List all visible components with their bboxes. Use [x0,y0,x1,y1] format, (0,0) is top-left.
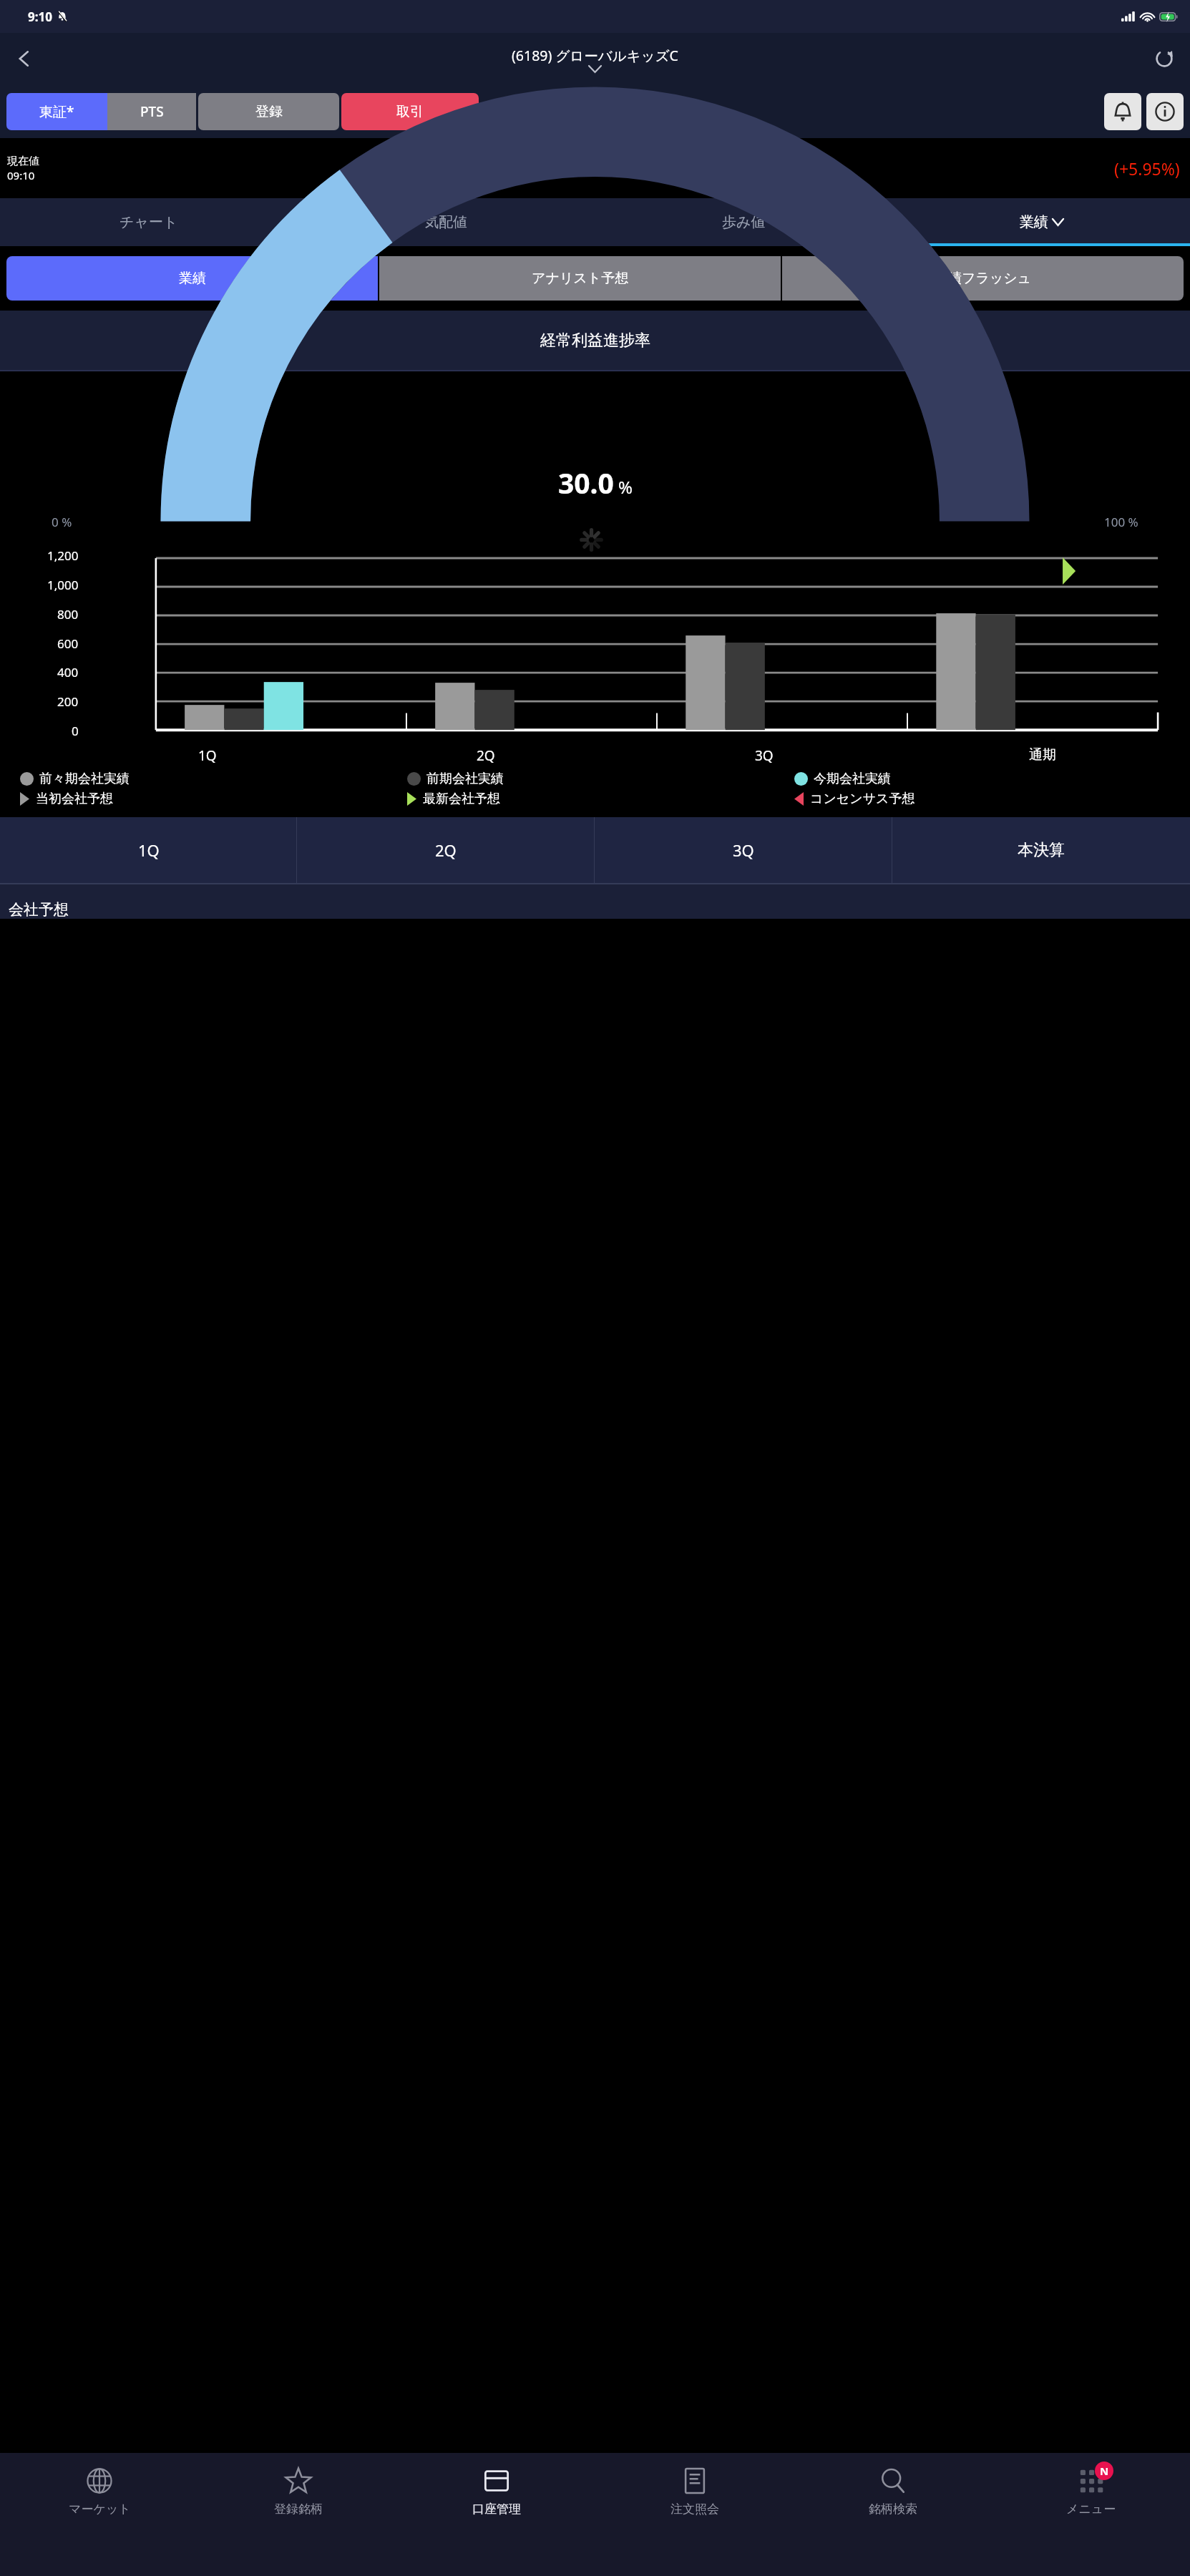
staticText: 3Q [733,839,754,861]
button[interactable]: アナリスト予想 [379,256,781,301]
staticText: 0 % [52,514,72,530]
staticText: アナリスト予想 [532,270,629,287]
button[interactable]: 2Q [297,817,595,883]
button[interactable]: 業績 [6,256,378,301]
staticText: 前々期会社実績 [39,771,130,787]
staticText: 今期会社実績 [814,771,891,787]
staticText: 1,200 [47,547,79,564]
staticText: 最新会社予想 [423,791,500,807]
button[interactable]: 業績 [892,198,1190,246]
button[interactable]: PTS [107,93,196,130]
staticText: コンセンサス予想 [810,791,915,807]
staticText: 前期会社実績 [426,771,504,787]
staticText: 当初会社予想 [36,791,113,807]
staticText: (6189) グローバルキッズC [512,46,678,65]
button[interactable]: 歩み値 [595,198,892,246]
staticText: 現在値 [7,155,39,168]
staticText: 経常利益進捗率 [540,331,650,351]
staticText: (+5.95%) [1114,157,1180,180]
button[interactable]: 業績フラッシュ [782,256,1184,301]
staticText: 業績 [179,270,206,287]
staticText: 業績 [1020,213,1048,231]
staticText: 100 % [1104,514,1138,530]
button[interactable]: 登録銘柄 [199,2464,397,2576]
button[interactable]: 東証* [6,93,107,130]
button[interactable]: 口座管理 [397,2464,595,2576]
staticText: 取引 [396,103,424,120]
staticText: 業績フラッシュ [935,270,1032,287]
staticText: 30.0 [558,464,614,502]
staticText: % [618,475,633,499]
button[interactable]: 1Q [0,817,297,883]
button[interactable]: Refresh [1146,40,1183,77]
button[interactable]: マーケット [0,2464,199,2576]
staticText: 9:10 [28,9,52,25]
staticText: 2Q [477,746,495,765]
staticText: チャート [120,213,178,231]
button[interactable]: N [992,2464,1190,2576]
staticText: 1,000 [47,577,79,593]
staticText: N [1100,2464,1109,2478]
staticText: 3Q [755,746,774,765]
staticText: 銘柄検索 [869,2502,917,2517]
staticText: 会社予想 [9,900,69,919]
button[interactable]: Alerts [1104,93,1141,130]
button[interactable]: 気配値 [297,198,595,246]
staticText: 0 [72,723,79,739]
staticText: マーケット [69,2502,131,2517]
staticText: 注文照会 [670,2502,719,2517]
button[interactable]: 3Q [595,817,892,883]
button[interactable]: 登録 [198,93,339,130]
button[interactable]: 銘柄検索 [794,2464,992,2576]
staticText: 400 [57,664,79,680]
staticText: 登録銘柄 [274,2502,323,2517]
staticText: 通期 [1029,746,1056,763]
staticText: 600 [57,635,79,652]
button[interactable]: 注文照会 [595,2464,794,2576]
staticText: PTS [140,102,164,121]
staticText: 1Q [198,746,217,765]
staticText: 200 [57,693,79,710]
staticText: 09:10 [7,168,35,182]
staticText: メニュー [1066,2502,1116,2517]
staticText: 2Q [435,839,457,861]
button[interactable]: Information [1146,93,1184,130]
staticText: 登録 [255,103,283,120]
staticText: 東証* [39,102,74,121]
staticText: 口座管理 [472,2502,521,2517]
staticText: 気配値 [424,213,467,231]
button[interactable]: 取引 [341,93,479,130]
button[interactable]: 本決算 [892,817,1190,883]
staticText: 1Q [138,839,160,861]
button[interactable]: チャート [0,198,297,246]
staticText: 歩み値 [722,213,766,231]
staticText: 800 [57,606,79,623]
staticText: 本決算 [1018,840,1065,860]
button[interactable]: Back [6,40,43,77]
